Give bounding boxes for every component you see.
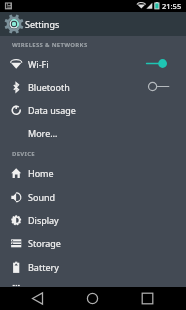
button[interactable]: Home: [0, 161, 186, 184]
button[interactable]: Display: [0, 208, 186, 231]
button[interactable]: Home: [79, 287, 106, 310]
button[interactable]: Bluetooth: [0, 75, 186, 98]
button[interactable]: Wi-Fi: [0, 52, 186, 75]
staticText: Sound: [28, 191, 56, 203]
button[interactable]: [0, 278, 186, 301]
button[interactable]: Recent apps: [134, 287, 161, 310]
staticText: Wi-Fi: [28, 58, 49, 70]
button[interactable]: More…: [0, 121, 186, 144]
staticText: Settings: [25, 18, 60, 30]
button[interactable]: Data usage: [0, 98, 186, 121]
button[interactable]: Storage: [0, 231, 186, 254]
staticText: Storage: [28, 237, 61, 249]
button[interactable]: Battery: [0, 255, 186, 278]
staticText: DEVICE: [12, 150, 35, 158]
staticText: Battery: [28, 261, 59, 273]
staticText: More…: [28, 127, 58, 139]
staticText: 21:55: [162, 1, 182, 11]
staticText: Data usage: [28, 104, 76, 116]
button[interactable]: Sound: [0, 185, 186, 208]
button[interactable]: Back: [24, 287, 51, 310]
staticText: Bluetooth: [28, 81, 70, 93]
staticText: Home: [28, 167, 54, 179]
staticText: WIRELESS & NETWORKS: [12, 41, 88, 49]
staticText: Display: [28, 214, 59, 226]
